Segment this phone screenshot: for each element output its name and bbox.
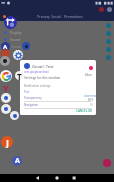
- button[interactable]: App: [1, 104, 11, 114]
- button[interactable]: Promotions: [62, 12, 84, 20]
- button[interactable]: Bubble: [106, 23, 111, 28]
- button[interactable]: App A: [12, 156, 22, 166]
- staticText: Display: [10, 30, 22, 35]
- staticText: Test: [24, 90, 30, 94]
- button[interactable]: Primary: [35, 12, 51, 20]
- button[interactable]: App: [103, 159, 111, 167]
- button[interactable]: App: [0, 56, 10, 66]
- staticText: Learn more: [84, 94, 96, 98]
- button[interactable]: OK: [88, 109, 93, 113]
- button[interactable]: Profile: [4, 16, 17, 29]
- staticText: OK: [88, 109, 93, 113]
- button[interactable]: App: [1, 93, 11, 103]
- button[interactable]: Bubble: [106, 47, 111, 52]
- button[interactable]: App: [15, 71, 24, 80]
- staticText: 80%: [88, 98, 94, 102]
- staticText: Navigation: [24, 103, 39, 107]
- staticText: CANCEL: [76, 109, 88, 113]
- staticText: Transparency: [24, 96, 42, 100]
- staticText: T: [17, 71, 22, 80]
- staticText: J: [6, 136, 9, 148]
- staticText: A: [3, 43, 8, 51]
- button[interactable]: Bubble: [22, 42, 30, 50]
- button[interactable]: Social: [49, 12, 63, 20]
- staticText: A: [15, 156, 20, 166]
- button[interactable]: Display: [2, 29, 28, 36]
- button[interactable]: Account: [107, 7, 112, 12]
- staticText: Settings for this window: [24, 76, 61, 80]
- button[interactable]: Bubble: [106, 31, 111, 36]
- button[interactable]: App: [10, 111, 19, 120]
- staticText: Gmail: Test: [32, 64, 54, 70]
- button[interactable]: Google: [0, 70, 12, 82]
- staticText: Sound: [10, 37, 21, 42]
- staticText: Primary: [37, 14, 50, 19]
- button[interactable]: App J: [1, 136, 13, 148]
- button[interactable]: Sound: [2, 36, 28, 43]
- button[interactable]: Notifications: [99, 7, 104, 12]
- staticText: Promotions: [64, 14, 83, 19]
- button[interactable]: Yahoo: [1, 82, 11, 92]
- button[interactable]: App A: [1, 42, 10, 51]
- button[interactable]: App: [1, 49, 10, 58]
- button[interactable]: Bubble: [106, 55, 111, 60]
- staticText: Gmail: Test: [11, 44, 30, 49]
- staticText: Y: [3, 82, 9, 92]
- button[interactable]: CANCEL: [76, 109, 88, 113]
- button[interactable]: Bubble: [106, 39, 111, 44]
- staticText: Social: [51, 14, 61, 19]
- staticText: Notification settings: [24, 84, 51, 88]
- staticText: Allow: [85, 73, 92, 77]
- staticText: com.google.android: [24, 70, 49, 74]
- button[interactable]: Settings: [13, 50, 23, 60]
